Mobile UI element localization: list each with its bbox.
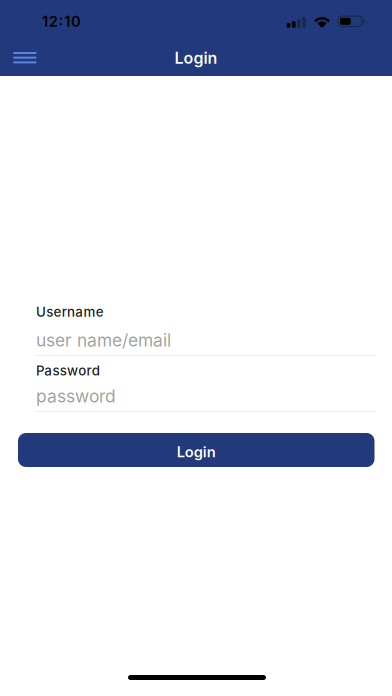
staticText: Login: [177, 443, 216, 461]
staticText: user name/email: [36, 330, 171, 350]
button[interactable]: user name/email: [0, 322, 392, 357]
button[interactable]: Login: [18, 433, 374, 467]
staticText: Password: [36, 363, 100, 378]
staticText: 12:10: [42, 13, 81, 30]
staticText: Login: [174, 49, 217, 67]
staticText: Username: [36, 304, 104, 320]
staticText: password: [36, 386, 116, 406]
button[interactable]: Menu: [7, 46, 43, 69]
button[interactable]: password: [0, 378, 392, 413]
